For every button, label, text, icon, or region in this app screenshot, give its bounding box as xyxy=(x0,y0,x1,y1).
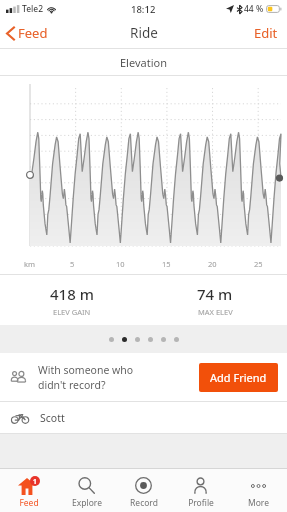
staticText: 10 xyxy=(116,259,125,269)
staticText: Feed xyxy=(18,24,48,42)
staticText: With someone who xyxy=(38,363,134,377)
button[interactable]: 1 xyxy=(0,469,57,512)
button[interactable]: Explore xyxy=(58,469,115,512)
staticText: didn't record? xyxy=(38,378,106,392)
button[interactable]: Add Friend xyxy=(199,363,278,392)
button[interactable]: Profile xyxy=(172,469,229,512)
other: Record xyxy=(135,477,152,494)
staticText: 44 % xyxy=(244,3,264,15)
other: More xyxy=(250,483,267,489)
staticText: 15 xyxy=(162,259,171,269)
staticText: Profile xyxy=(188,497,214,509)
button[interactable]: More xyxy=(230,469,287,512)
staticText: 25 xyxy=(254,259,263,269)
staticText: More xyxy=(248,497,269,509)
staticText: Add Friend xyxy=(210,370,267,385)
staticText: 20 xyxy=(208,259,217,269)
staticText: Elevation xyxy=(120,55,167,70)
button[interactable]: Feed xyxy=(0,20,56,46)
staticText: km xyxy=(24,259,36,269)
staticText: Scott xyxy=(40,411,65,425)
staticText: Feed xyxy=(19,497,39,509)
button[interactable]: Edit xyxy=(245,18,287,48)
staticText: 74 m xyxy=(197,284,233,304)
staticText: 1 xyxy=(33,477,37,486)
button[interactable]: Record xyxy=(115,469,172,512)
staticText: 418 m xyxy=(50,284,94,304)
staticText: Record xyxy=(130,497,158,509)
other: Profile xyxy=(192,477,209,494)
staticText: ELEV GAIN xyxy=(53,307,91,317)
staticText: 18:12 xyxy=(131,3,156,16)
button[interactable]: Scott xyxy=(0,402,287,433)
staticText: 5 xyxy=(70,259,75,269)
staticText: Ride xyxy=(130,24,158,42)
staticText: MAX ELEV xyxy=(198,307,233,317)
staticText: Tele2 xyxy=(22,3,44,15)
other: Explore xyxy=(78,477,95,494)
staticText: Explore xyxy=(72,497,102,509)
